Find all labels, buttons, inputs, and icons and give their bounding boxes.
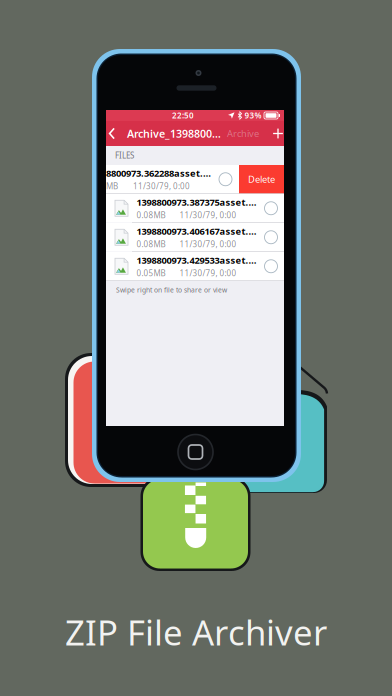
staticText: 1398800973.387375asset.… <box>136 196 256 208</box>
staticText: Archive_1398800… <box>127 126 221 141</box>
staticText: 1398800973.429533asset.… <box>136 254 256 266</box>
staticText: 93% <box>244 110 261 121</box>
staticText: 8800973.362288asset.… <box>106 167 211 179</box>
staticText: 0.05MB <box>136 268 165 278</box>
staticText: Delete <box>248 173 275 185</box>
staticText: 11/30/79, 0:00 <box>179 239 236 249</box>
staticText: FILES <box>115 150 134 161</box>
button[interactable]: Back <box>101 121 123 146</box>
staticText: 11/30/79, 0:00 <box>179 268 236 278</box>
button[interactable]: 1398800973.429533asset.… <box>106 252 284 280</box>
staticText: 11/30/79, 0:00 <box>179 210 236 220</box>
button[interactable]: 1398800973.406167asset.… <box>106 223 284 251</box>
staticText: 0.08MB <box>136 239 165 249</box>
staticText: 11/30/79, 0:00 <box>133 181 190 191</box>
staticText: ZIP File Archiver <box>65 609 327 655</box>
staticText: 22:50 <box>172 110 194 121</box>
staticText: 1398800973.406167asset.… <box>136 225 256 237</box>
staticText: Archive <box>227 127 259 140</box>
staticText: MB <box>106 181 118 191</box>
button[interactable]: Delete <box>239 165 284 193</box>
staticText: Swipe right on file to share or view <box>116 286 227 294</box>
button[interactable]: Add <box>267 121 289 146</box>
button[interactable]: 1398800973.387375asset.… <box>106 194 284 222</box>
staticText: 0.08MB <box>136 210 165 220</box>
